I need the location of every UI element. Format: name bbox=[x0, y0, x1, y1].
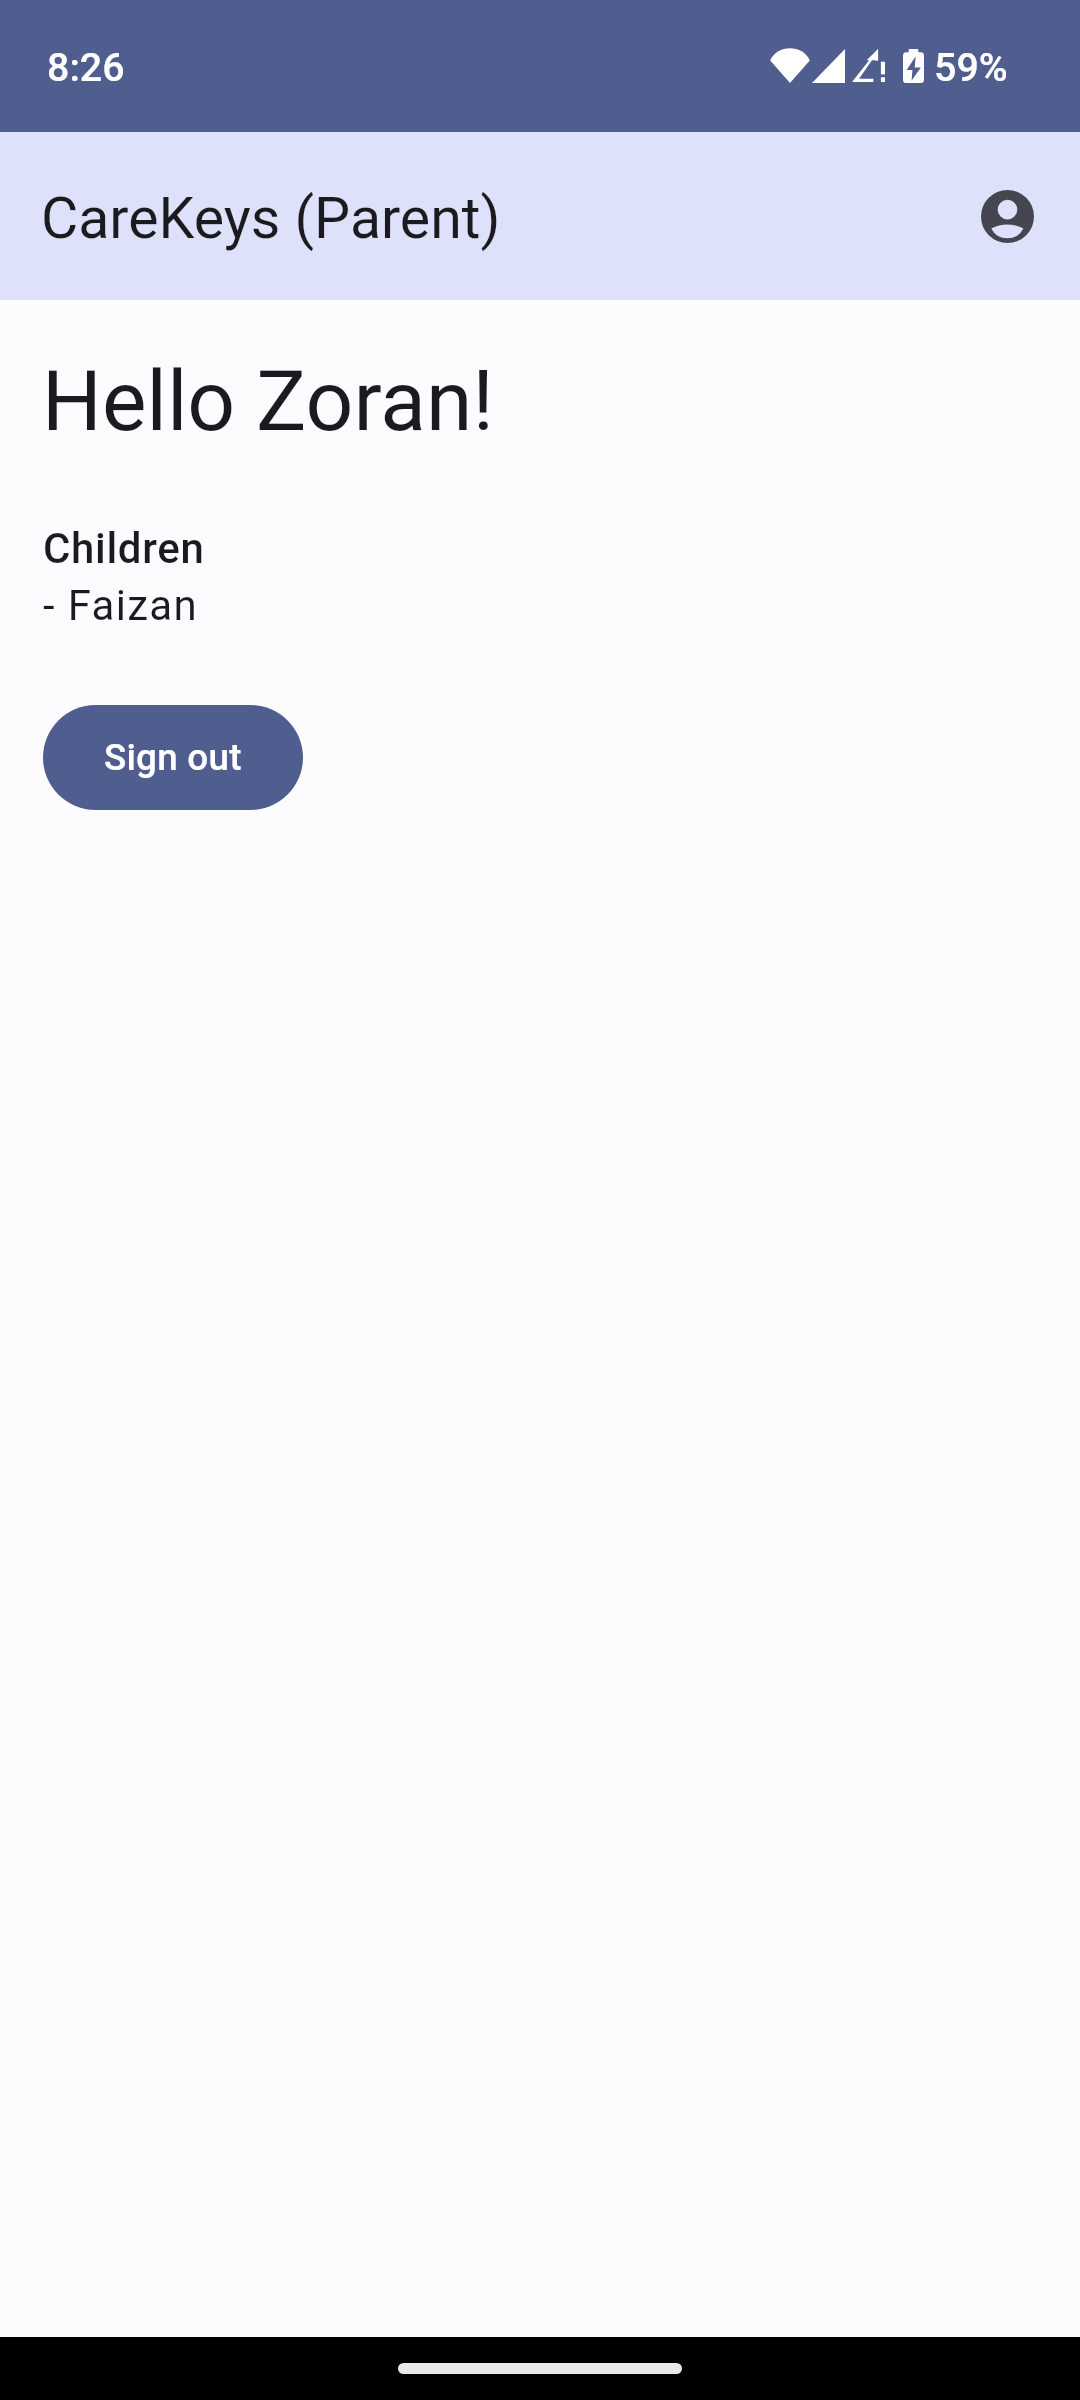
staticText: 8:26 bbox=[47, 44, 125, 90]
staticText: 59% bbox=[934, 44, 1008, 90]
staticText: Hello Zoran! bbox=[42, 352, 494, 450]
staticText: Sign out bbox=[104, 736, 242, 779]
staticText: Children bbox=[43, 524, 205, 573]
staticText: - Faizan bbox=[43, 581, 198, 630]
button[interactable]: Sign out bbox=[43, 705, 303, 810]
button[interactable]: Account bbox=[943, 152, 1071, 280]
staticText: CareKeys (Parent) bbox=[41, 185, 501, 252]
